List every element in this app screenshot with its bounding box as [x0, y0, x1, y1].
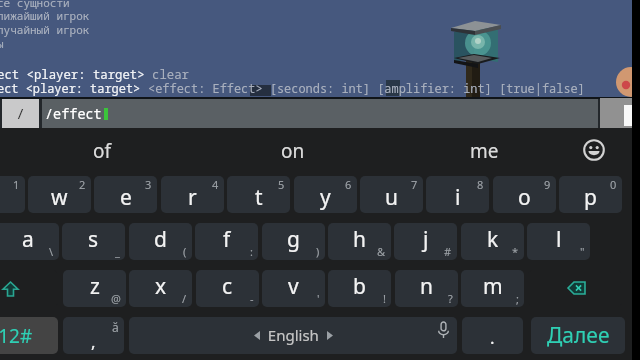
button[interactable]: a	[0, 223, 59, 260]
button[interactable]: n	[395, 270, 458, 307]
staticText: (	[183, 244, 187, 259]
staticText: me	[470, 138, 499, 164]
staticText: Далее	[547, 321, 610, 350]
staticText: t	[255, 183, 263, 212]
button[interactable]: .	[462, 317, 523, 354]
staticText: *	[512, 244, 519, 259]
staticText: x	[155, 272, 167, 301]
button[interactable]: u	[360, 176, 423, 213]
staticText: j	[423, 225, 429, 254]
staticText: ,	[91, 330, 96, 353]
staticText: ?12#	[0, 323, 33, 349]
staticText: /effect	[45, 105, 102, 123]
staticText: -	[250, 291, 254, 306]
button[interactable]: of	[7, 130, 197, 172]
staticText: ;	[516, 291, 519, 306]
button[interactable]: w	[28, 176, 91, 213]
button[interactable]: 1	[0, 176, 25, 213]
staticText: z	[90, 272, 100, 301]
staticText: e	[120, 183, 132, 212]
staticText: s	[88, 225, 99, 254]
button[interactable]: m	[461, 270, 524, 307]
staticText: v	[288, 272, 299, 301]
button[interactable]: x	[129, 270, 192, 307]
button[interactable]: Send	[600, 98, 632, 128]
staticText: clear	[152, 66, 189, 83]
staticText: English	[260, 325, 327, 345]
staticText: 3	[145, 177, 152, 192]
button[interactable]: h	[328, 223, 391, 260]
staticText: 0	[610, 177, 617, 192]
staticText: 8	[477, 177, 484, 192]
button[interactable]: v	[262, 270, 325, 307]
staticText: p	[584, 183, 597, 212]
staticText: '	[317, 291, 320, 306]
staticText: of	[93, 138, 112, 164]
button[interactable]: Slash command	[2, 99, 39, 128]
staticText: се сущности	[0, 0, 70, 10]
staticText: 1	[13, 177, 20, 192]
staticText: 6	[345, 177, 352, 192]
button[interactable]: Shift	[0, 270, 58, 307]
staticText: #	[444, 244, 452, 259]
button[interactable]: /effect	[42, 99, 598, 128]
staticText: &	[377, 244, 386, 259]
staticText: ect <player: target>	[0, 80, 148, 96]
staticText: "	[580, 244, 585, 259]
button[interactable]: s	[62, 223, 125, 260]
button[interactable]: me	[389, 130, 579, 172]
button[interactable]: ?12#	[0, 317, 58, 354]
button[interactable]: c	[196, 270, 259, 307]
button[interactable]: Space	[129, 317, 457, 354]
button[interactable]: e	[94, 176, 157, 213]
button[interactable]: d	[129, 223, 192, 260]
button[interactable]: o	[493, 176, 556, 213]
staticText: :	[250, 244, 253, 259]
staticText: y	[320, 183, 331, 212]
staticText: i	[455, 183, 461, 212]
staticText: on	[281, 138, 305, 164]
staticText: f	[223, 225, 231, 254]
staticText: c	[222, 272, 233, 301]
staticText: /	[182, 291, 187, 306]
button[interactable]: f	[195, 223, 258, 260]
button[interactable]: g	[262, 223, 325, 260]
staticText: ă	[112, 319, 119, 335]
staticText: )	[316, 244, 320, 259]
staticText: l	[556, 225, 562, 254]
staticText: @	[111, 291, 121, 306]
staticText: u	[385, 183, 398, 212]
staticText: 4	[212, 177, 219, 192]
staticText: r	[188, 183, 197, 212]
staticText: d	[154, 225, 167, 254]
staticText: 9	[544, 177, 551, 192]
staticText: 5	[278, 177, 285, 192]
staticText: <effect: Effect> [seconds: int] [amplifi…	[148, 80, 585, 96]
button[interactable]: b	[328, 270, 391, 307]
staticText: h	[353, 225, 366, 254]
staticText: ect <player: target>	[0, 66, 152, 83]
button[interactable]: p	[559, 176, 622, 213]
button[interactable]: on	[198, 130, 388, 172]
button[interactable]: Далее	[531, 317, 625, 354]
button[interactable]: l	[527, 223, 590, 260]
staticText: g	[287, 225, 300, 254]
button[interactable]: t	[227, 176, 290, 213]
button[interactable]: ,	[63, 317, 124, 354]
button[interactable]: Backspace	[528, 270, 622, 307]
button[interactable]: r	[161, 176, 224, 213]
staticText: ы	[0, 36, 4, 51]
staticText: !	[383, 291, 386, 306]
button[interactable]: j	[394, 223, 457, 260]
button[interactable]: k	[461, 223, 524, 260]
staticText: _	[115, 244, 120, 259]
button[interactable]: z	[63, 270, 126, 307]
button[interactable]: i	[426, 176, 489, 213]
staticText: b	[353, 272, 366, 301]
staticText: /	[16, 103, 26, 123]
staticText: k	[487, 225, 499, 254]
staticText: лижайший игрок	[0, 8, 90, 23]
button[interactable]: Emoji	[572, 130, 615, 172]
button[interactable]: y	[294, 176, 357, 213]
staticText: .	[490, 326, 495, 349]
